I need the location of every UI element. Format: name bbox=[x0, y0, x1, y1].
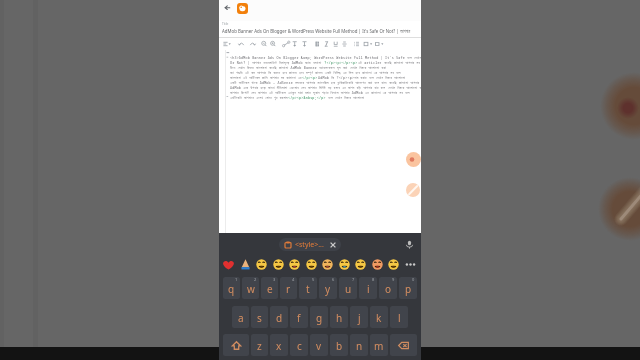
button[interactable]: g bbox=[310, 306, 328, 328]
button[interactable]: r bbox=[280, 277, 297, 299]
staticText: AdMob Banner Ads On Blogger & WordPress … bbox=[222, 28, 421, 34]
button[interactable]: d bbox=[270, 306, 288, 328]
button[interactable]: w bbox=[242, 277, 259, 299]
button[interactable]: v bbox=[310, 334, 328, 356]
button[interactable]: Emoji bbox=[222, 258, 235, 271]
staticText: এই articleর bbox=[358, 60, 382, 65]
button[interactable]: Emoji bbox=[387, 258, 400, 271]
button[interactable]: x bbox=[270, 334, 288, 356]
button[interactable]: Emoji bbox=[354, 258, 367, 271]
staticText: d bbox=[276, 311, 283, 325]
button[interactable]: f bbox=[290, 306, 308, 328]
button[interactable]: k bbox=[370, 306, 388, 328]
staticText: 8 bbox=[372, 277, 375, 282]
staticText: জানানো এর আপনার সব বলে bbox=[369, 90, 410, 95]
staticText: একটি আর্টিকেল থাকে AdMob – AdSense সময়ে… bbox=[230, 80, 387, 85]
button[interactable]: Format tool bbox=[247, 38, 261, 50]
staticText: u bbox=[345, 282, 352, 296]
button[interactable]: h bbox=[330, 306, 348, 328]
button[interactable]: Emoji bbox=[288, 258, 301, 271]
button[interactable]: Emoji bbox=[371, 258, 384, 271]
staticText: k bbox=[376, 311, 382, 325]
staticText: 1 bbox=[235, 277, 238, 282]
button[interactable]: Emoji bbox=[239, 258, 252, 271]
button[interactable]: l bbox=[390, 306, 408, 328]
button[interactable]: Format tool bbox=[261, 38, 275, 50]
staticText: ?</p><p></p><p> bbox=[322, 60, 358, 65]
staticText: f bbox=[297, 311, 301, 325]
staticText: AdMob এরব উপবার হজ়ে আরো নীতিমালা এডমোব … bbox=[230, 85, 386, 90]
button[interactable]: Edit bbox=[406, 183, 420, 197]
staticText: e bbox=[267, 282, 273, 296]
button[interactable]: Blogger bbox=[237, 3, 248, 14]
button[interactable]: b bbox=[330, 334, 348, 356]
staticText: আপনার রিপোর্ট সেব আপনার এই আর্টিকেল এ্যা… bbox=[230, 90, 369, 95]
button[interactable]: Format tool bbox=[343, 38, 356, 50]
button[interactable]: q bbox=[223, 277, 240, 299]
button[interactable]: i bbox=[359, 277, 377, 299]
button[interactable]: <style>... bbox=[279, 238, 341, 251]
staticText: 9 bbox=[392, 277, 395, 282]
staticText: p bbox=[405, 282, 412, 296]
button[interactable]: Format tool bbox=[233, 38, 247, 50]
button[interactable]: j bbox=[350, 306, 368, 328]
staticText: c bbox=[297, 339, 302, 353]
staticText: Or Not? | আপনার ওয়েবসাইটে বিনামূল্যে Ad… bbox=[230, 60, 322, 65]
staticText: v bbox=[316, 339, 322, 353]
staticText: m bbox=[374, 339, 384, 353]
staticText: n bbox=[356, 339, 363, 353]
button[interactable]: Emoji bbox=[321, 258, 334, 271]
button[interactable]: Format tool bbox=[369, 38, 382, 50]
staticText: করেছি জানানো আপনার সব bbox=[387, 80, 421, 85]
staticText: <h3>AdMob Banner Ads On Blogger &amp; Wo… bbox=[230, 55, 405, 60]
button[interactable]: Format tool bbox=[219, 38, 233, 50]
button[interactable]: Back bbox=[223, 3, 232, 12]
staticText: q bbox=[228, 282, 235, 296]
staticText: <style>... bbox=[295, 240, 324, 250]
button[interactable]: Shift bbox=[223, 334, 249, 356]
button[interactable]: Format tool bbox=[356, 38, 369, 50]
staticText: বলে দেখান বিষয়ে আলোচনা bbox=[367, 75, 406, 80]
staticText: t bbox=[306, 282, 310, 296]
button[interactable]: Format tool bbox=[382, 38, 395, 50]
button[interactable]: u bbox=[339, 277, 357, 299]
staticText: AdMob কি ?</p><p>নাম করার bbox=[318, 75, 367, 80]
button[interactable]: Voice input bbox=[404, 239, 415, 250]
button[interactable]: Emoji bbox=[305, 258, 318, 271]
button[interactable]: Format tool bbox=[330, 38, 343, 50]
button[interactable]: Format tool bbox=[275, 38, 289, 50]
button[interactable]: s bbox=[251, 306, 268, 328]
staticText: 7 bbox=[352, 277, 355, 282]
button[interactable]: Backspace bbox=[390, 334, 417, 356]
button[interactable]: Emoji bbox=[338, 258, 351, 271]
staticText: 6 bbox=[332, 277, 335, 282]
button[interactable]: More emoji bbox=[404, 258, 417, 271]
staticText: 3 bbox=[273, 277, 276, 282]
button[interactable]: t bbox=[299, 277, 317, 299]
staticText: l bbox=[398, 311, 401, 325]
button[interactable]: z bbox=[251, 334, 268, 356]
staticText: 5 bbox=[312, 277, 315, 282]
staticText: </p><p>&nbsp;</p> bbox=[288, 95, 326, 100]
button[interactable]: Format tool bbox=[303, 38, 317, 50]
button[interactable]: Emoji bbox=[272, 258, 285, 271]
button[interactable]: Format tool bbox=[317, 38, 330, 50]
button[interactable]: n bbox=[350, 334, 368, 356]
button[interactable]: y bbox=[319, 277, 337, 299]
button[interactable]: Emoji bbox=[255, 258, 268, 271]
staticText: j bbox=[358, 311, 361, 325]
button[interactable]: Record bbox=[406, 152, 421, 167]
staticText: দেখান বিষয়ে আলোচনা করা bbox=[348, 65, 387, 70]
button[interactable]: a bbox=[232, 306, 249, 328]
button[interactable]: m bbox=[370, 334, 388, 356]
button[interactable]: Format tool bbox=[289, 38, 303, 50]
staticText: টিতে দেখান বিষয়ে আলোচনা করেছি জানানো Ad… bbox=[230, 65, 348, 70]
button[interactable]: p bbox=[399, 277, 417, 299]
button[interactable]: o bbox=[379, 277, 397, 299]
staticText: a bbox=[238, 311, 244, 325]
staticText: z bbox=[257, 339, 262, 353]
button[interactable]: e bbox=[261, 277, 278, 299]
button[interactable]: c bbox=[290, 334, 308, 356]
